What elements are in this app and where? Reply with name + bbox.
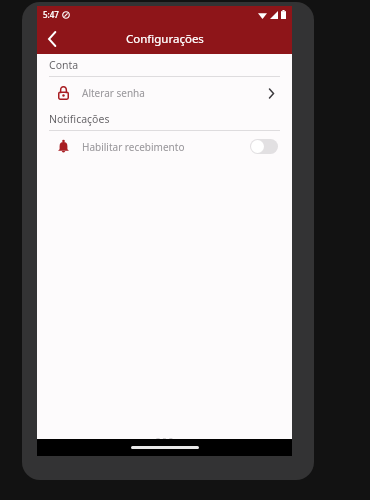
staticText: Notificações xyxy=(49,112,110,126)
button[interactable]: Back xyxy=(37,24,67,54)
button[interactable]: Habilitar recebimento xyxy=(37,131,292,162)
staticText: Alterar senha xyxy=(82,86,145,100)
button[interactable]: Habilitar recebimento toggle xyxy=(250,139,278,154)
staticText: 5:47 xyxy=(43,9,59,20)
button[interactable]: Alterar senha xyxy=(37,77,292,108)
staticText: Conta xyxy=(49,58,79,72)
staticText: Habilitar recebimento xyxy=(82,140,185,154)
staticText: 2.0.0 xyxy=(156,435,173,445)
staticText: Configurações xyxy=(126,31,204,47)
